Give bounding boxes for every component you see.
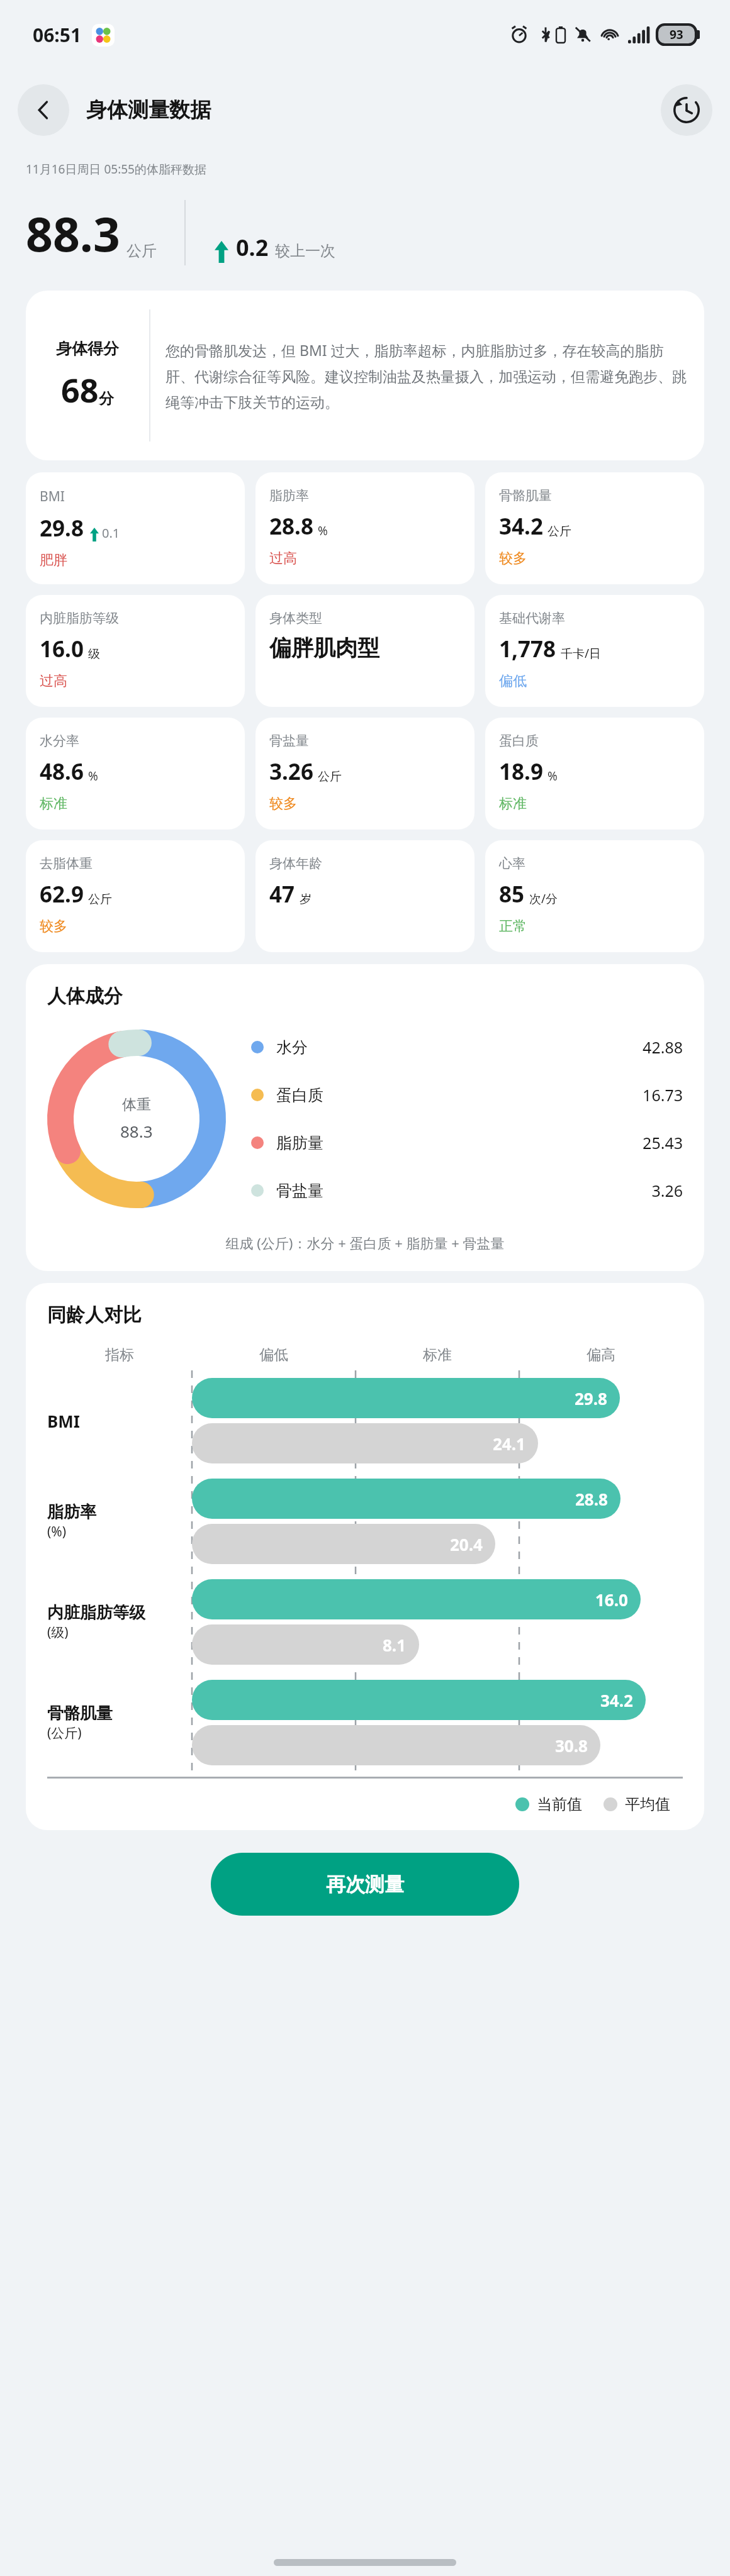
staticText: 基础代谢率 — [499, 610, 565, 626]
staticText: 30.8 — [555, 1735, 588, 1757]
staticText: 11月16日周日 05:55的体脂秤数据 — [26, 161, 206, 177]
button[interactable]: 脂肪率 — [255, 472, 474, 584]
staticText: 47 — [269, 879, 295, 909]
staticText: 组成 (公斤)：水分 + 蛋白质 + 脂肪量 + 骨盐量 — [47, 1233, 683, 1252]
staticText: 标准 — [356, 1346, 519, 1364]
staticText: 体重 — [122, 1096, 151, 1114]
staticText: 偏低 — [499, 672, 527, 690]
staticText: 1,778 — [499, 634, 556, 664]
staticText: 62.9 — [40, 879, 84, 909]
staticText: 身体类型 — [269, 610, 322, 626]
staticText: 蛋白质 — [276, 1085, 358, 1105]
staticText: 标准 — [40, 795, 67, 813]
staticText: 正常 — [499, 918, 527, 935]
staticText: 肥胖 — [40, 552, 67, 569]
button[interactable]: 同龄人对比 — [26, 1283, 704, 1830]
button[interactable]: 身体年龄 — [255, 840, 474, 952]
staticText: 06:51 — [33, 22, 82, 48]
staticText: 心率 — [499, 855, 525, 872]
staticText: (公斤) — [47, 1724, 82, 1742]
button[interactable]: Back — [18, 84, 69, 136]
staticText: 过高 — [40, 672, 67, 690]
staticText: 3.26 — [358, 1180, 683, 1201]
staticText: 16.0 — [40, 634, 84, 664]
staticText: 0.1 — [102, 525, 120, 541]
button[interactable]: 身体类型 — [255, 595, 474, 707]
button[interactable]: 骨骼肌量 — [485, 472, 704, 584]
staticText: 18.9 — [499, 757, 543, 787]
staticText: 身体得分 — [56, 339, 119, 358]
staticText: 岁 — [300, 892, 312, 907]
button[interactable]: 内脏脂肪等级 — [26, 595, 245, 707]
staticText: 身体年龄 — [269, 855, 322, 872]
staticText: 8.1 — [383, 1634, 407, 1656]
button[interactable]: 水分率 — [26, 718, 245, 830]
staticText: 68 — [61, 367, 99, 412]
staticText: (%) — [47, 1523, 67, 1541]
staticText: 93 — [670, 26, 683, 43]
staticText: 较多 — [499, 550, 527, 567]
staticText: 再次测量 — [326, 1872, 404, 1897]
staticText: 过高 — [269, 550, 297, 567]
staticText: 25.43 — [358, 1132, 683, 1153]
staticText: 内脏脂肪等级 — [47, 1602, 145, 1623]
staticText: 分 — [99, 389, 114, 408]
button[interactable]: 人体成分 — [26, 964, 704, 1271]
button[interactable]: 去脂体重 — [26, 840, 245, 952]
staticText: 16.0 — [595, 1589, 628, 1611]
staticText: 脂肪率 — [269, 487, 309, 504]
staticText: 同龄人对比 — [47, 1303, 142, 1327]
staticText: 0.2 — [236, 232, 269, 263]
staticText: 34.2 — [499, 511, 543, 541]
button[interactable]: 身体得分 — [26, 291, 704, 460]
staticText: 脂肪量 — [276, 1133, 358, 1153]
staticText: 蛋白质 — [499, 733, 539, 749]
staticText: 偏高 — [519, 1346, 683, 1364]
staticText: 较多 — [269, 795, 297, 813]
staticText: 骨盐量 — [276, 1181, 358, 1201]
staticText: 29.8 — [40, 513, 84, 543]
staticText: 24.1 — [493, 1433, 525, 1455]
staticText: % — [318, 523, 328, 539]
staticText: 千卡/日 — [561, 645, 602, 662]
staticText: 指标 — [47, 1346, 192, 1364]
staticText: 较上一次 — [275, 241, 335, 260]
staticText: (级) — [47, 1623, 69, 1641]
staticText: 骨骼肌量 — [499, 487, 552, 504]
staticText: 42.88 — [358, 1036, 683, 1058]
staticText: 28.8 — [575, 1488, 608, 1510]
staticText: 16.73 — [358, 1084, 683, 1106]
staticText: BMI — [40, 487, 65, 506]
staticText: 48.6 — [40, 757, 84, 787]
staticText: 公斤 — [547, 524, 571, 539]
staticText: 标准 — [499, 795, 527, 813]
staticText: 34.2 — [600, 1689, 633, 1711]
button[interactable]: 蛋白质 — [485, 718, 704, 830]
staticText: 级 — [88, 647, 100, 662]
staticText: 3.26 — [269, 757, 313, 787]
staticText: 公斤 — [88, 892, 112, 907]
button[interactable]: 骨盐量 — [255, 718, 474, 830]
button[interactable]: 基础代谢率 — [485, 595, 704, 707]
staticText: 水分 — [276, 1038, 358, 1057]
staticText: 您的骨骼肌发达，但 BMI 过大，脂肪率超标，内脏脂肪过多，存在较高的脂肪肝、代… — [166, 340, 688, 411]
staticText: 公斤 — [126, 241, 157, 260]
staticText: 85 — [499, 879, 525, 909]
staticText: 内脏脂肪等级 — [40, 610, 119, 626]
staticText: 29.8 — [575, 1387, 607, 1409]
staticText: 骨骼肌量 — [47, 1703, 113, 1724]
staticText: 平均值 — [625, 1795, 670, 1814]
button[interactable]: 心率 — [485, 840, 704, 952]
button[interactable]: 再次测量 — [211, 1853, 519, 1916]
staticText: 当前值 — [537, 1795, 582, 1814]
staticText: 28.8 — [269, 511, 313, 541]
staticText: 较多 — [40, 918, 67, 935]
staticText: % — [547, 768, 558, 784]
staticText: 脂肪率 — [47, 1502, 96, 1523]
staticText: 偏胖肌肉型 — [269, 634, 379, 662]
button[interactable]: BMI — [26, 472, 245, 584]
staticText: 身体测量数据 — [86, 97, 211, 123]
staticText: 88.3 — [120, 1120, 153, 1142]
button[interactable]: History — [661, 84, 712, 136]
staticText: 公斤 — [318, 769, 342, 784]
